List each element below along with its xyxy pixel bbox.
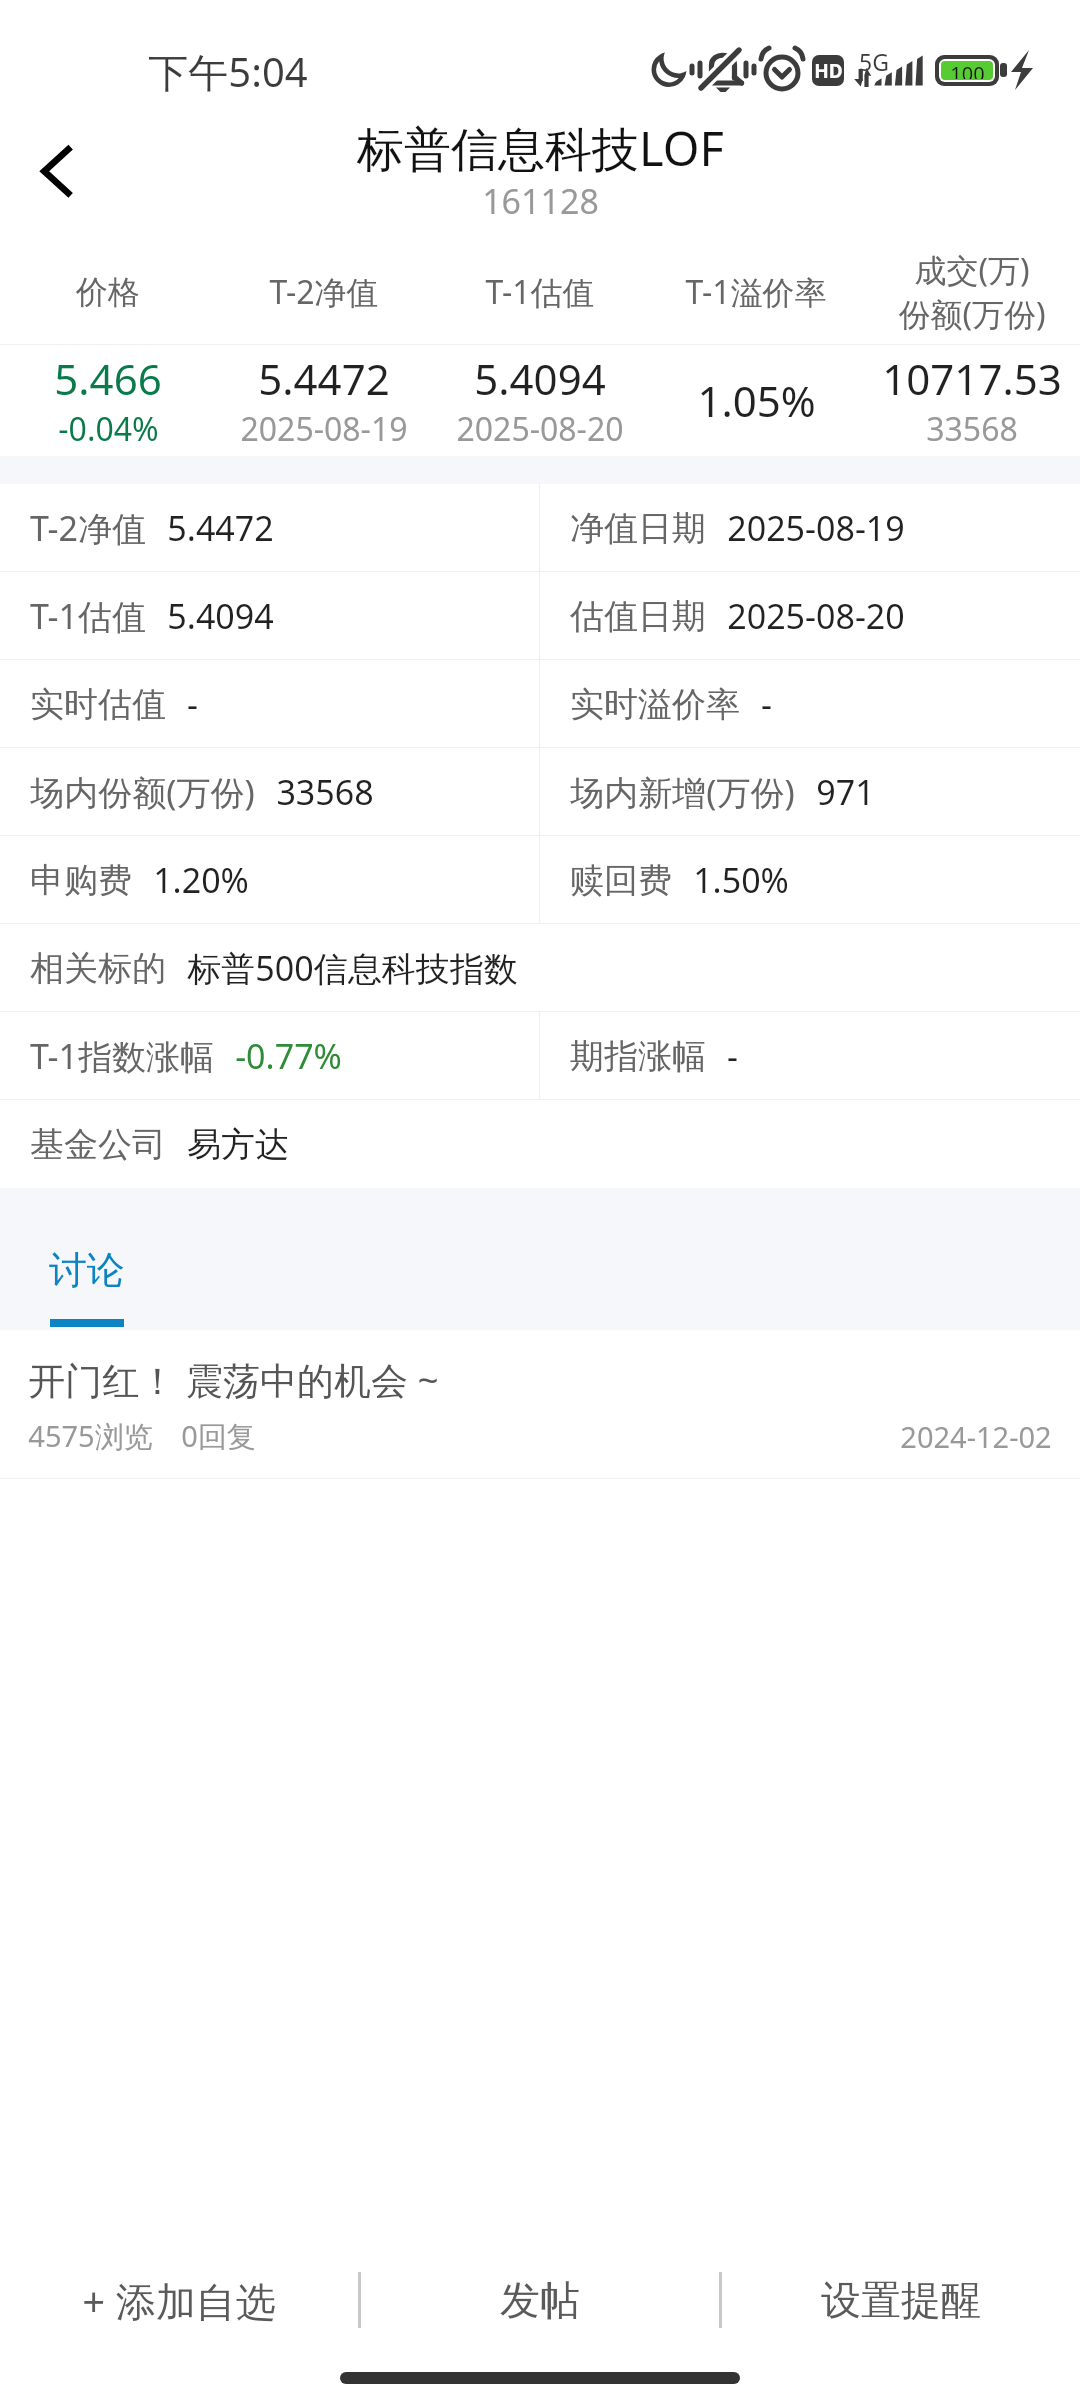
- button[interactable]: Back: [5, 120, 105, 220]
- staticText: -: [187, 681, 198, 727]
- button[interactable]: 开门红！ 震荡中的机会 ~: [0, 1330, 1080, 1479]
- staticText: 5.4094: [167, 593, 274, 639]
- staticText: T-2净值: [30, 505, 146, 551]
- staticText: 1.05%: [697, 372, 816, 429]
- staticText: 5G: [859, 46, 889, 77]
- staticText: T-1估值: [485, 270, 595, 314]
- staticText: 33568: [276, 769, 374, 815]
- staticText: 份额(万份): [898, 292, 1046, 336]
- staticText: 0回复: [181, 1416, 256, 1456]
- staticText: 估值日期: [570, 595, 706, 638]
- staticText: 价格: [76, 272, 140, 312]
- button[interactable]: + 添加自选: [0, 2244, 358, 2356]
- staticText: 33568: [926, 407, 1018, 451]
- staticText: 1.20%: [153, 857, 249, 903]
- staticText: 相关标的: [30, 947, 166, 990]
- staticText: 开门红！ 震荡中的机会 ~: [28, 1354, 439, 1405]
- button[interactable]: 设置提醒: [722, 2244, 1080, 2356]
- staticText: 10717.53: [882, 350, 1062, 407]
- staticText: 2025-08-19: [727, 505, 905, 551]
- staticText: 5.4472: [258, 350, 390, 407]
- staticText: 净值日期: [570, 507, 706, 550]
- staticText: 期指涨幅: [570, 1035, 706, 1078]
- staticText: T-1估值: [30, 593, 146, 639]
- staticText: 申购费: [30, 859, 132, 902]
- staticText: 4575浏览: [28, 1416, 153, 1456]
- staticText: 2025-08-19: [240, 407, 408, 451]
- staticText: HD: [814, 58, 843, 84]
- staticText: 5.4472: [167, 505, 274, 551]
- staticText: T-1指数涨幅: [30, 1033, 214, 1079]
- staticText: 基金公司: [30, 1123, 166, 1166]
- staticText: 971: [816, 769, 875, 815]
- staticText: 标普信息科技LOF: [357, 116, 724, 180]
- staticText: 下午5:04: [148, 44, 308, 99]
- staticText: 成交(万): [914, 248, 1030, 292]
- staticText: T-1溢价率: [685, 270, 827, 314]
- staticText: 2025-08-20: [727, 593, 905, 639]
- staticText: -0.04%: [58, 407, 159, 451]
- staticText: T-2净值: [269, 270, 379, 314]
- staticText: 讨论: [49, 1246, 125, 1294]
- button[interactable]: 发帖: [361, 2244, 719, 2356]
- staticText: 5.4094: [474, 350, 606, 407]
- staticText: -0.77%: [235, 1033, 342, 1079]
- staticText: 2024-12-02: [900, 1417, 1052, 1456]
- staticText: 161128: [482, 178, 599, 224]
- staticText: 1.50%: [693, 857, 789, 903]
- staticText: 发帖: [500, 2275, 580, 2325]
- staticText: 2025-08-20: [456, 407, 624, 451]
- staticText: + 添加自选: [82, 2273, 276, 2328]
- staticText: 标普500信息科技指数: [187, 945, 518, 991]
- staticText: 实时溢价率: [570, 683, 740, 726]
- staticText: 场内份额(万份): [30, 769, 255, 815]
- staticText: -: [727, 1033, 738, 1079]
- button[interactable]: 讨论: [38, 1188, 136, 1330]
- staticText: -: [761, 681, 772, 727]
- staticText: 100: [950, 61, 985, 79]
- staticText: 设置提醒: [821, 2275, 981, 2325]
- staticText: 实时估值: [30, 683, 166, 726]
- staticText: 场内新增(万份): [570, 769, 795, 815]
- staticText: 5.466: [54, 350, 162, 407]
- staticText: 易方达: [187, 1123, 289, 1166]
- staticText: 赎回费: [570, 859, 672, 902]
